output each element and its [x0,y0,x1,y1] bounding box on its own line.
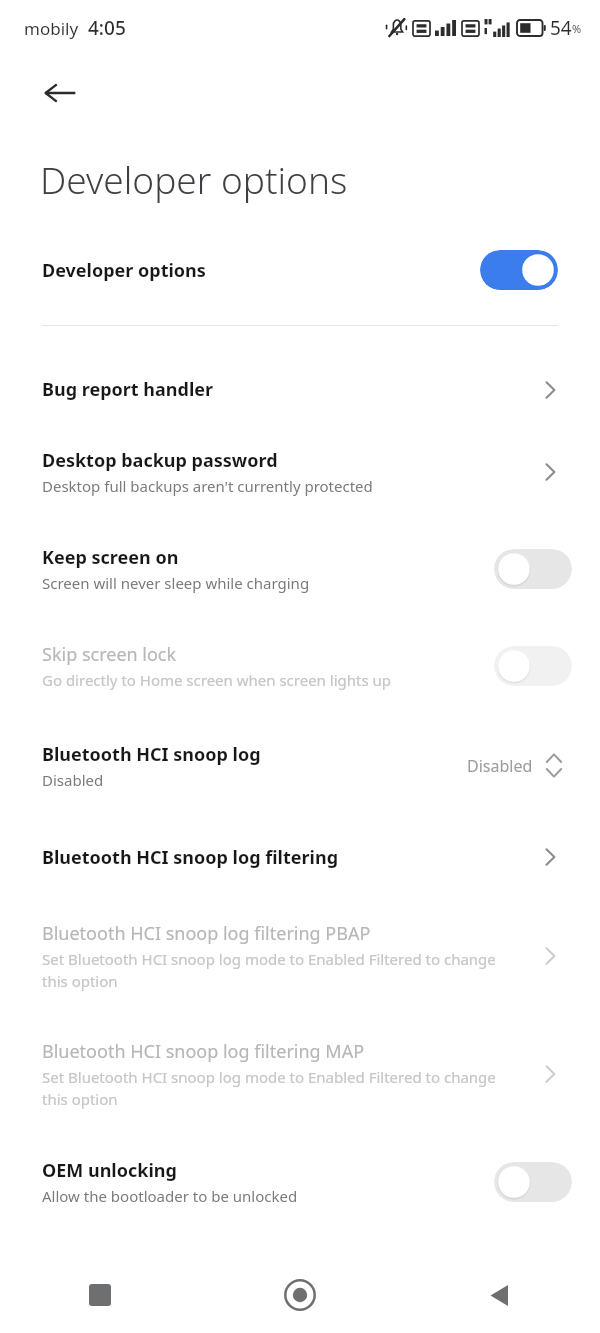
staticText: Developer options [40,154,348,204]
staticText: Desktop full backups aren't currently pr… [42,476,373,496]
button[interactable]: Bluetooth HCI snoop log filtering [0,817,600,897]
staticText: Disabled [42,770,104,790]
button[interactable]: Bluetooth HCI snoop log [0,714,600,817]
button[interactable]: Back [400,1257,600,1333]
staticText: Set Bluetooth HCI snoop log mode to Enab… [42,1067,518,1110]
staticText: 4:05 [88,15,126,41]
staticText: Set Bluetooth HCI snoop log mode to Enab… [42,949,518,992]
staticText: mobily [24,17,79,40]
staticText: Desktop backup password [42,448,278,473]
staticText: Keep screen on [42,545,179,570]
staticText: Bluetooth HCI snoop log filtering MAP [42,1039,365,1064]
staticText: % [572,21,582,36]
button[interactable]: Desktop backup password [0,423,600,520]
button[interactable]: Developer options on [480,250,558,290]
staticText: Skip screen lock [42,642,177,667]
button[interactable]: Toggle off [494,646,572,686]
button[interactable]: Home [200,1257,400,1333]
button[interactable]: Change value [467,752,572,779]
button[interactable]: Developer options [0,234,600,306]
button[interactable]: Open [528,934,572,978]
button[interactable]: Open [528,450,572,494]
button[interactable]: Open [528,1052,572,1096]
staticText: Screen will never sleep while charging [42,573,310,593]
button[interactable]: Back [30,63,90,123]
button[interactable]: Skip screen lock [0,617,600,714]
staticText: Go directly to Home screen when screen l… [42,670,392,690]
button[interactable]: Open [528,368,572,412]
button[interactable]: OEM unlocking [0,1133,600,1230]
staticText: OEM unlocking [42,1158,177,1183]
staticText: Bluetooth HCI snoop log [42,742,261,767]
staticText: Allow the bootloader to be unlocked [42,1186,298,1206]
button[interactable]: Toggle off [494,1162,572,1202]
staticText: Bug report handler [42,377,214,402]
button[interactable]: Open [528,835,572,879]
staticText: Bluetooth HCI snoop log filtering [42,845,339,870]
staticText: Bluetooth HCI snoop log filtering PBAP [42,921,371,946]
button[interactable]: Keep screen on [0,520,600,617]
staticText: Disabled [467,755,533,777]
button[interactable]: Recents [0,1257,200,1333]
button[interactable]: Bluetooth HCI snoop log filtering PBAP [0,897,600,1015]
button[interactable]: Bluetooth HCI snoop log filtering MAP [0,1015,600,1133]
button[interactable]: Bug report handler [0,356,600,423]
button[interactable]: Toggle off [494,549,572,589]
staticText: 54 [550,15,572,41]
staticText: Developer options [42,258,480,283]
